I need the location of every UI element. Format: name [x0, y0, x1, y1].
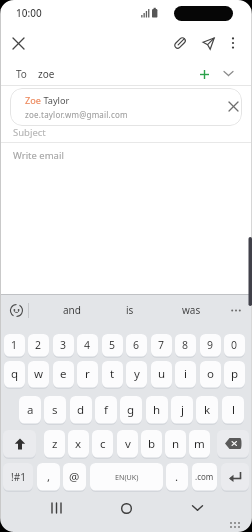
button[interactable] [200, 35, 216, 51]
staticText: 7 [158, 338, 165, 352]
button[interactable]: k [196, 396, 218, 425]
button[interactable]: is [110, 297, 150, 323]
staticText: . [175, 469, 179, 485]
staticText: w [34, 366, 44, 382]
button[interactable]: f [95, 396, 117, 425]
staticText: e [60, 366, 67, 382]
button[interactable]: v [117, 430, 138, 459]
staticText: i [184, 366, 187, 382]
staticText: y [134, 366, 140, 382]
button[interactable]: s [44, 396, 66, 425]
button[interactable]: 4 [77, 334, 98, 358]
button[interactable]: 7 [151, 334, 172, 358]
staticText: l [232, 402, 235, 418]
staticText: j [181, 402, 184, 418]
staticText: n [172, 436, 180, 452]
staticText: Write email [13, 149, 64, 162]
staticText: 0 [231, 338, 238, 352]
staticText: .com [195, 471, 214, 482]
staticText: zoe [38, 67, 55, 81]
staticText: v [125, 436, 131, 452]
button[interactable] [186, 498, 208, 518]
button[interactable]: w [28, 361, 49, 389]
staticText: u [158, 366, 166, 382]
staticText: 4 [84, 338, 91, 352]
button[interactable]: 8 [175, 334, 196, 358]
button[interactable]: t [102, 361, 123, 389]
button[interactable] [10, 35, 26, 51]
button[interactable]: and [52, 297, 92, 323]
button[interactable]: b [141, 430, 162, 459]
button[interactable]: . [166, 463, 188, 492]
button[interactable]: o [200, 361, 221, 389]
button[interactable] [226, 297, 246, 323]
staticText: a [27, 402, 34, 418]
staticText: z [52, 436, 58, 452]
button[interactable] [226, 35, 240, 51]
staticText: 9 [207, 338, 214, 352]
staticText: x [75, 436, 82, 452]
button[interactable] [172, 35, 188, 51]
button[interactable] [9, 303, 24, 318]
button[interactable]: 3 [53, 334, 74, 358]
button[interactable]: u [151, 361, 172, 389]
button[interactable]: Zoe Taylor [10, 88, 242, 126]
staticText: zoe.taylor.wm@gmail.com [25, 109, 128, 120]
button[interactable]: d [70, 396, 92, 425]
button[interactable]: 5 [102, 334, 123, 358]
button[interactable]: 2 [28, 334, 49, 358]
staticText: d [77, 402, 85, 418]
button[interactable]: n [165, 430, 186, 459]
button[interactable]: 9 [200, 334, 221, 358]
button[interactable]: 0 [224, 334, 245, 358]
button[interactable]: was [171, 297, 211, 323]
button[interactable]: 6 [126, 334, 147, 358]
staticText: m [194, 436, 205, 452]
button[interactable]: e [53, 361, 74, 389]
button[interactable]: i [175, 361, 196, 389]
button[interactable]: 1 [4, 334, 25, 358]
staticText: !#1 [11, 470, 26, 484]
button[interactable]: y [126, 361, 147, 389]
button[interactable] [224, 97, 242, 115]
button[interactable]: q [4, 361, 25, 389]
button[interactable] [217, 430, 249, 459]
staticText: t [110, 366, 115, 382]
button[interactable] [221, 463, 249, 492]
button[interactable]: j [171, 396, 193, 425]
button[interactable] [115, 498, 137, 518]
staticText: , [47, 469, 51, 485]
button[interactable] [45, 498, 69, 518]
button[interactable]: .com [192, 463, 217, 492]
button[interactable]: x [68, 430, 89, 459]
button[interactable]: z [44, 430, 65, 459]
staticText: Zoe Taylor [25, 94, 70, 107]
button[interactable]: @ [63, 463, 86, 492]
button[interactable]: c [92, 430, 113, 459]
button[interactable]: l [222, 396, 244, 425]
button[interactable]: a [19, 396, 41, 425]
button[interactable]: EN(UK) [90, 463, 163, 492]
staticText: r [85, 366, 90, 382]
button[interactable]: r [77, 361, 98, 389]
staticText: g [127, 402, 135, 418]
staticText: is [126, 303, 134, 317]
button[interactable] [196, 66, 212, 82]
button[interactable]: m [189, 430, 210, 459]
button[interactable]: g [120, 396, 142, 425]
button[interactable] [221, 66, 236, 81]
button[interactable]: , [37, 463, 60, 492]
button[interactable]: p [224, 361, 245, 389]
staticText: 2 [35, 338, 42, 352]
button[interactable]: !#1 [3, 463, 33, 492]
staticText: s [52, 402, 58, 418]
button[interactable]: h [146, 396, 168, 425]
staticText: EN(UK) [115, 472, 139, 482]
staticText: f [104, 402, 108, 418]
button[interactable] [3, 430, 36, 459]
staticText: k [204, 402, 211, 418]
staticText: h [153, 402, 161, 418]
staticText: was [182, 303, 201, 317]
button[interactable] [0, 58, 252, 85]
staticText: c [100, 436, 106, 452]
